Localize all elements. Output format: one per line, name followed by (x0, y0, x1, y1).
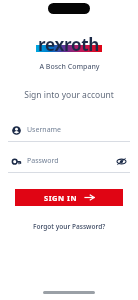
other: Password (12, 157, 21, 166)
staticText: Username (27, 125, 62, 135)
button[interactable]: Show password (117, 157, 126, 166)
staticText: rexroth (38, 33, 100, 56)
other: Username (12, 126, 21, 135)
button[interactable]: Username (8, 123, 130, 142)
staticText: Sign into your account (24, 89, 114, 101)
button[interactable]: Password (8, 154, 130, 173)
button[interactable]: Forgot your Password? (27, 220, 112, 233)
staticText: SIGN IN (44, 193, 78, 203)
staticText: A Bosch Company (39, 62, 100, 72)
staticText: Password (27, 156, 59, 166)
staticText: Forgot your Password? (33, 222, 106, 231)
button[interactable]: SIGN IN (15, 189, 123, 206)
